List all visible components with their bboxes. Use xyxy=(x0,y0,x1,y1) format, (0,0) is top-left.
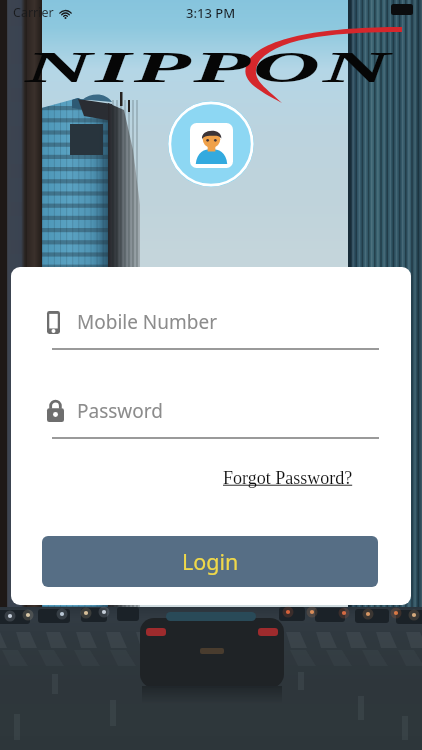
button[interactable]: Login xyxy=(42,536,378,587)
staticText: Login xyxy=(182,547,239,576)
staticText: NIPPON xyxy=(25,42,394,92)
button[interactable]: Password xyxy=(47,398,379,439)
button[interactable]: Mobile Number xyxy=(47,309,379,350)
staticText: 3:13 PM xyxy=(186,4,236,22)
staticText: Forgot Password? xyxy=(223,468,353,488)
staticText: Password xyxy=(77,398,163,424)
staticText: Mobile Number xyxy=(77,309,218,335)
button[interactable]: Forgot Password? xyxy=(220,464,356,492)
staticText: Carrier xyxy=(13,4,54,21)
